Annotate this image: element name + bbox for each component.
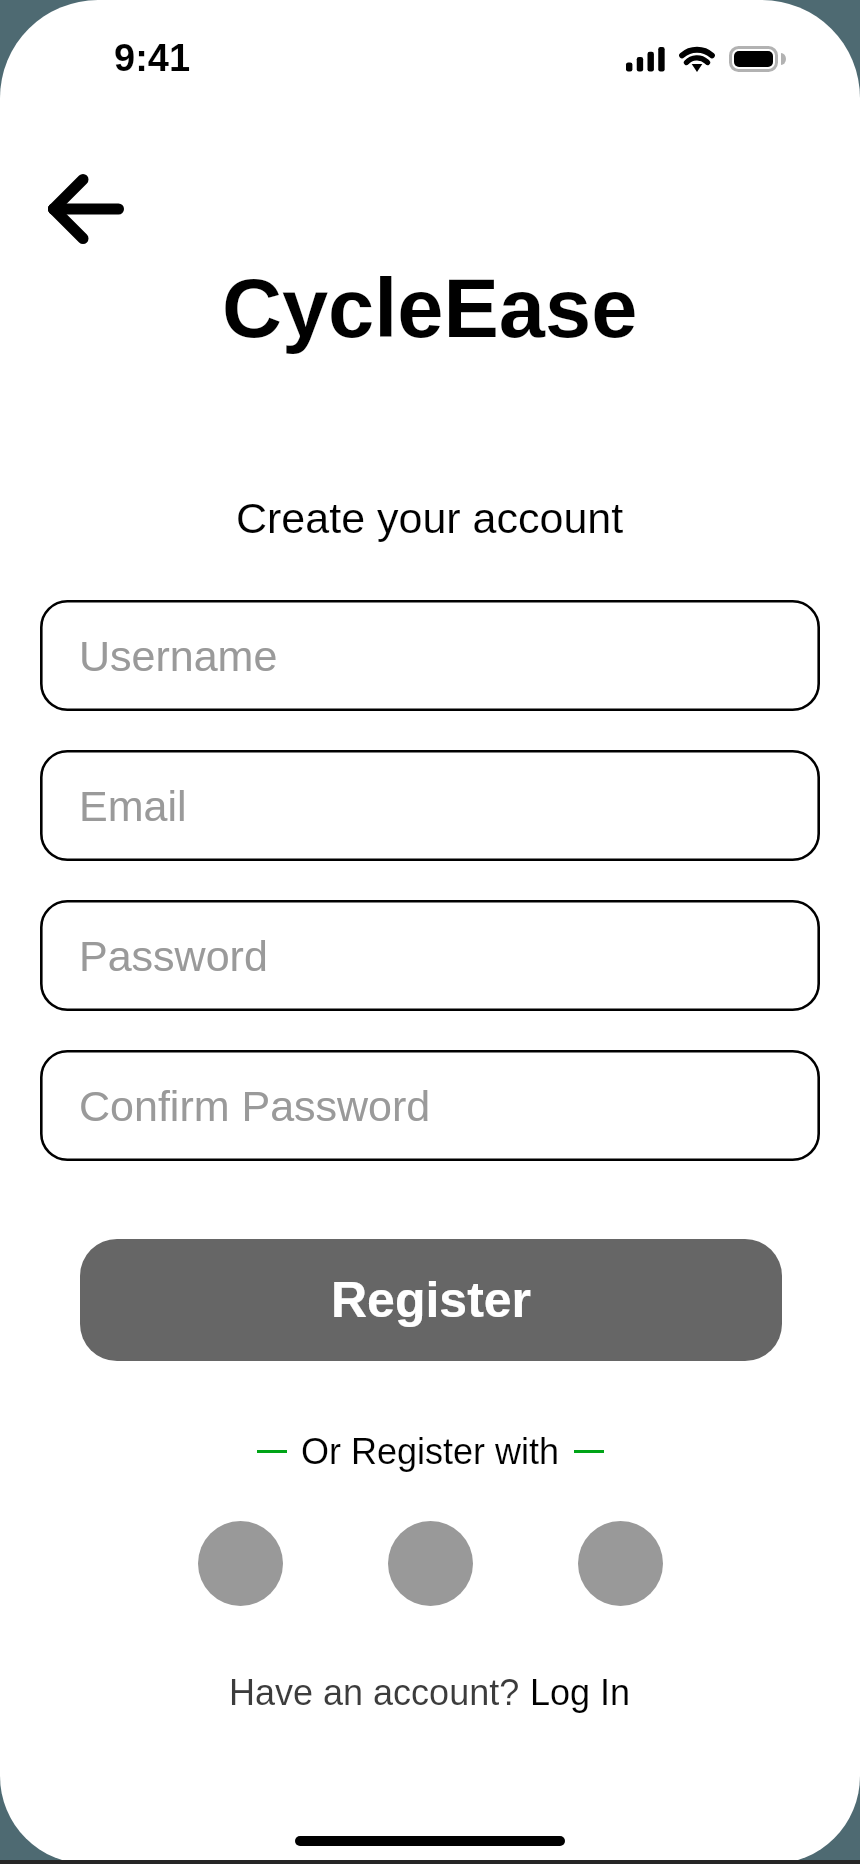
button[interactable]: Back (20, 153, 152, 265)
staticText: Username (79, 632, 278, 680)
staticText: Log In (530, 1672, 631, 1712)
staticText: 9:41 (114, 37, 191, 79)
staticText: Register (331, 1272, 532, 1328)
staticText: Email (79, 782, 187, 830)
staticText: CycleEase (222, 262, 638, 355)
button[interactable]: Username (40, 600, 820, 711)
staticText: Confirm Password (79, 1082, 431, 1130)
button[interactable]: Log In (530, 1672, 631, 1712)
staticText: Or Register with (301, 1431, 560, 1471)
button[interactable]: Sign up with Google (198, 1521, 283, 1606)
staticText: Have an account? (229, 1672, 530, 1712)
staticText: Password (79, 932, 268, 980)
staticText: Create your account (236, 494, 624, 542)
button[interactable]: Sign up with Apple (578, 1521, 663, 1606)
button[interactable]: Email (40, 750, 820, 861)
button[interactable]: Register (80, 1239, 782, 1361)
button[interactable]: Sign up with Facebook (388, 1521, 473, 1606)
button[interactable]: Password (40, 900, 820, 1011)
button[interactable]: Confirm Password (40, 1050, 820, 1161)
